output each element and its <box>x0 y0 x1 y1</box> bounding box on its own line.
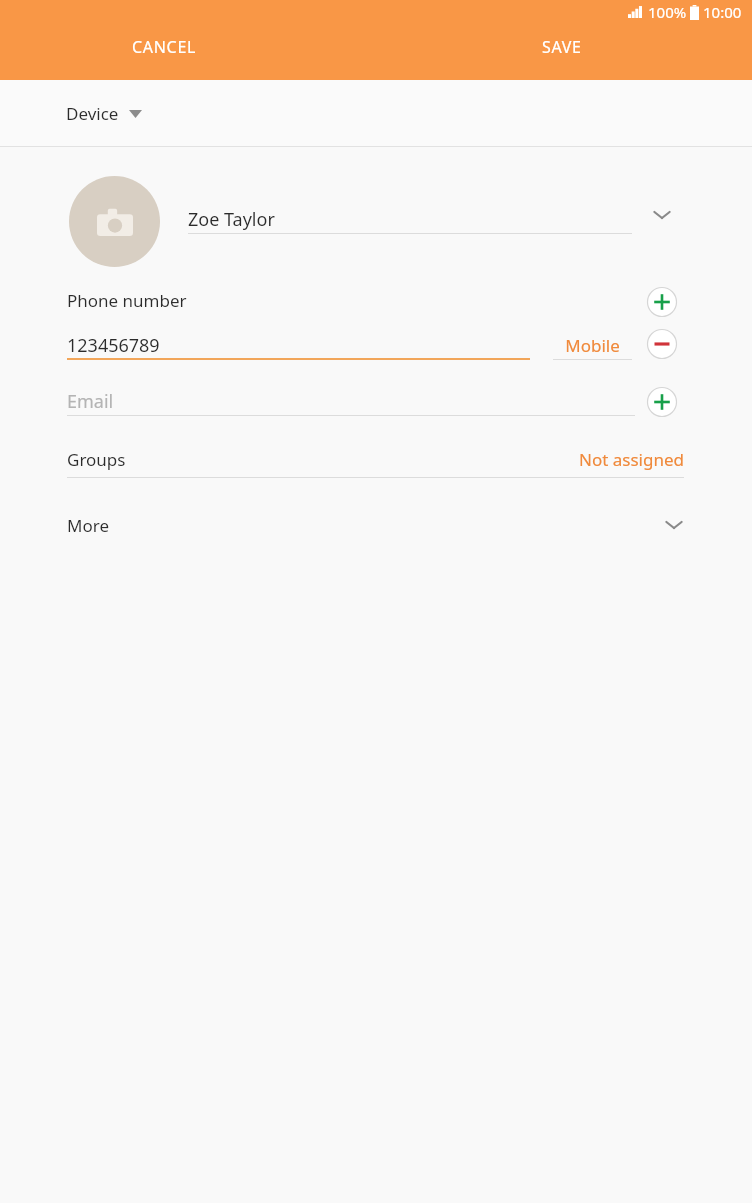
button[interactable]: Phone number <box>67 289 187 312</box>
button[interactable]: Add photo <box>69 176 160 267</box>
staticText: More <box>67 514 109 537</box>
staticText: Mobile <box>565 334 620 357</box>
staticText: Phone number <box>67 289 187 312</box>
staticText: CANCEL <box>132 36 197 58</box>
button[interactable]: 123456789 <box>67 327 530 363</box>
button[interactable]: SAVE <box>528 30 596 64</box>
button[interactable]: Expand name <box>640 193 684 237</box>
staticText: 100% <box>648 2 687 22</box>
button[interactable]: Add email <box>644 384 680 420</box>
button[interactable]: Device <box>52 94 156 133</box>
staticText: 123456789 <box>67 333 160 358</box>
staticText: Email <box>67 389 114 414</box>
button[interactable]: Remove phone number <box>644 326 680 362</box>
button[interactable]: CANCEL <box>118 30 211 64</box>
button[interactable]: Mobile <box>553 327 632 363</box>
staticText: Device <box>66 102 119 125</box>
staticText: Groups <box>67 448 126 471</box>
button[interactable]: Add phone number <box>644 284 680 320</box>
button[interactable]: Groups <box>67 440 684 478</box>
staticText: SAVE <box>542 36 582 58</box>
button[interactable]: Zoe Taylor <box>188 199 632 239</box>
staticText: Zoe Taylor <box>188 207 275 232</box>
button[interactable]: Email <box>67 383 635 419</box>
staticText: Not assigned <box>579 448 684 471</box>
button[interactable]: More <box>67 502 684 548</box>
staticText: 10:00 <box>703 2 742 22</box>
